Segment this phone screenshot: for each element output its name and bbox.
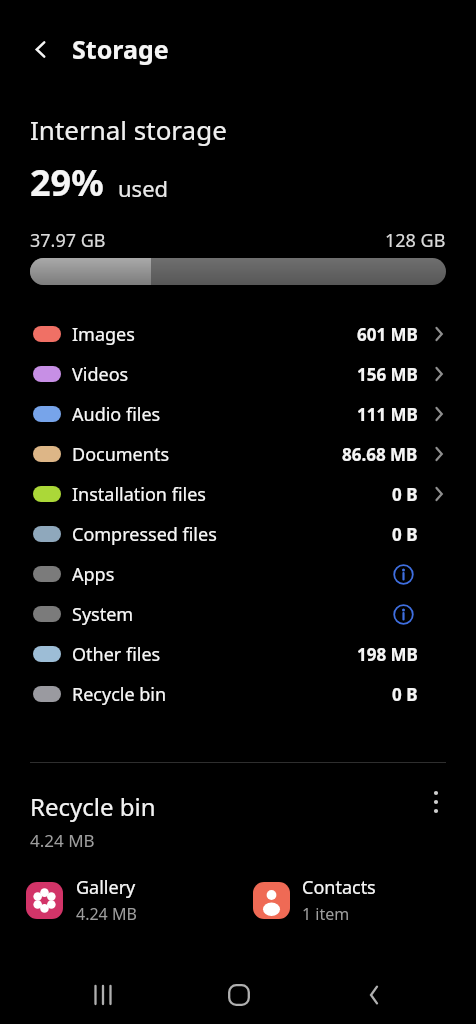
- staticText: 111 MB: [357, 403, 418, 426]
- button[interactable]: [306, 966, 441, 1024]
- button[interactable]: Recycle bin: [0, 674, 476, 714]
- staticText: 0 B: [392, 683, 418, 706]
- staticText: Documents: [72, 442, 170, 467]
- button[interactable]: Contacts: [238, 875, 476, 925]
- staticText: Recycle bin: [30, 790, 156, 823]
- button[interactable]: Gallery: [0, 875, 238, 925]
- staticText: 601 MB: [357, 323, 418, 346]
- staticText: Audio files: [72, 402, 161, 427]
- button[interactable]: System: [0, 594, 476, 634]
- button[interactable]: Compressed files: [0, 514, 476, 554]
- staticText: 37.97 GB: [30, 228, 106, 253]
- staticText: Images: [72, 322, 135, 347]
- staticText: 1 item: [302, 903, 350, 925]
- staticText: Apps: [72, 562, 115, 587]
- staticText: Other files: [72, 642, 161, 667]
- button[interactable]: Recycle bin: [0, 790, 476, 852]
- staticText: 156 MB: [357, 363, 418, 386]
- staticText: Storage: [72, 32, 169, 66]
- staticText: 86.68 MB: [342, 443, 418, 466]
- staticText: Gallery: [76, 875, 136, 900]
- button[interactable]: [393, 604, 414, 625]
- button[interactable]: [35, 966, 171, 1024]
- staticText: Recycle bin: [72, 682, 167, 707]
- staticText: 4.24 MB: [30, 829, 95, 852]
- button[interactable]: Installation files: [0, 474, 476, 514]
- staticText: 0 B: [392, 483, 418, 506]
- button[interactable]: [393, 564, 414, 585]
- staticText: Internal storage: [30, 112, 227, 147]
- staticText: 128 GB: [385, 228, 446, 253]
- staticText: Contacts: [302, 875, 376, 900]
- staticText: 0 B: [392, 523, 418, 546]
- button[interactable]: Apps: [0, 554, 476, 594]
- button[interactable]: Videos: [0, 354, 476, 394]
- staticText: Compressed files: [72, 522, 217, 547]
- button[interactable]: Documents: [0, 434, 476, 474]
- staticText: System: [72, 602, 134, 627]
- button[interactable]: Images: [0, 314, 476, 354]
- staticText: Videos: [72, 362, 129, 387]
- staticText: Installation files: [72, 482, 206, 507]
- button[interactable]: Audio files: [0, 394, 476, 434]
- button[interactable]: [24, 33, 56, 65]
- staticText: 198 MB: [357, 643, 418, 666]
- button[interactable]: [424, 790, 448, 814]
- button[interactable]: [171, 966, 306, 1024]
- staticText: 4.24 MB: [76, 903, 137, 925]
- staticText: 29%: [30, 158, 104, 207]
- button[interactable]: Other files: [0, 634, 476, 674]
- staticText: used: [118, 173, 169, 203]
